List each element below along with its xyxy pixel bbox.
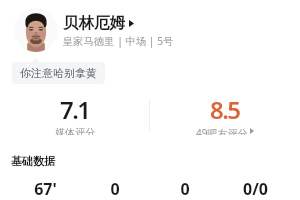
- button[interactable]: 贝林厄姆: [63, 13, 134, 33]
- button[interactable]: 7.1: [0, 93, 149, 135]
- staticText: 媒体评分: [55, 126, 95, 135]
- staticText: 7.1: [60, 93, 90, 126]
- staticText: 67': [34, 178, 57, 200]
- button[interactable]: Player avatar: [14, 8, 58, 52]
- staticText: 0: [110, 178, 120, 200]
- button[interactable]: 8.5: [150, 93, 300, 135]
- staticText: 贝林厄姆: [63, 13, 125, 33]
- staticText: 0: [180, 178, 190, 200]
- staticText: 8.5: [210, 93, 240, 126]
- staticText: 基础数据: [11, 154, 55, 168]
- staticText: 皇家马德里 | 中场 | 5号: [63, 34, 174, 48]
- button[interactable]: 你注意哈别拿黄: [12, 62, 105, 84]
- staticText: 0/0: [243, 178, 268, 200]
- staticText: 49吧友评分: [196, 126, 248, 135]
- staticText: 你注意哈别拿黄: [20, 66, 97, 80]
